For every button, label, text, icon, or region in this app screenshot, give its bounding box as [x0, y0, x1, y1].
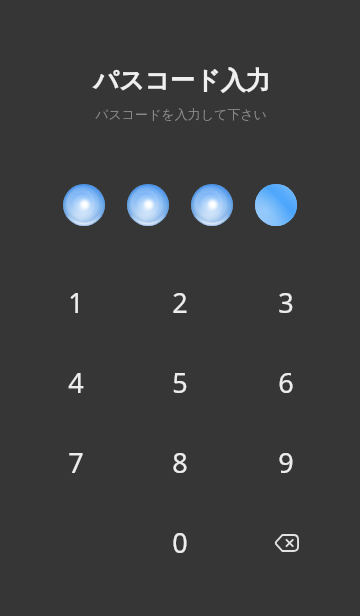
staticText: 7	[68, 444, 84, 481]
button[interactable]: 9	[246, 432, 326, 492]
button[interactable]: 3	[246, 272, 326, 332]
staticText: 9	[278, 444, 294, 481]
staticText: パスコード入力	[2, 65, 360, 96]
button[interactable]: 4	[36, 352, 116, 412]
button[interactable]: Delete last digit	[246, 513, 326, 573]
button[interactable]: 0	[140, 512, 220, 572]
staticText: パスコードを入力して下さい	[1, 106, 360, 122]
button[interactable]: 8	[140, 432, 220, 492]
staticText: 5	[172, 364, 188, 401]
button[interactable]: 7	[36, 432, 116, 492]
button[interactable]: 2	[140, 272, 220, 332]
staticText: 4	[68, 364, 84, 401]
staticText: 0	[172, 524, 188, 561]
staticText: 3	[278, 284, 294, 321]
button[interactable]: 6	[246, 352, 326, 412]
staticText: 8	[172, 444, 188, 481]
button[interactable]: 5	[140, 352, 220, 412]
button[interactable]: 1	[36, 272, 116, 332]
staticText: 6	[278, 364, 294, 401]
staticText: 1	[68, 284, 84, 321]
staticText: 2	[172, 284, 188, 321]
